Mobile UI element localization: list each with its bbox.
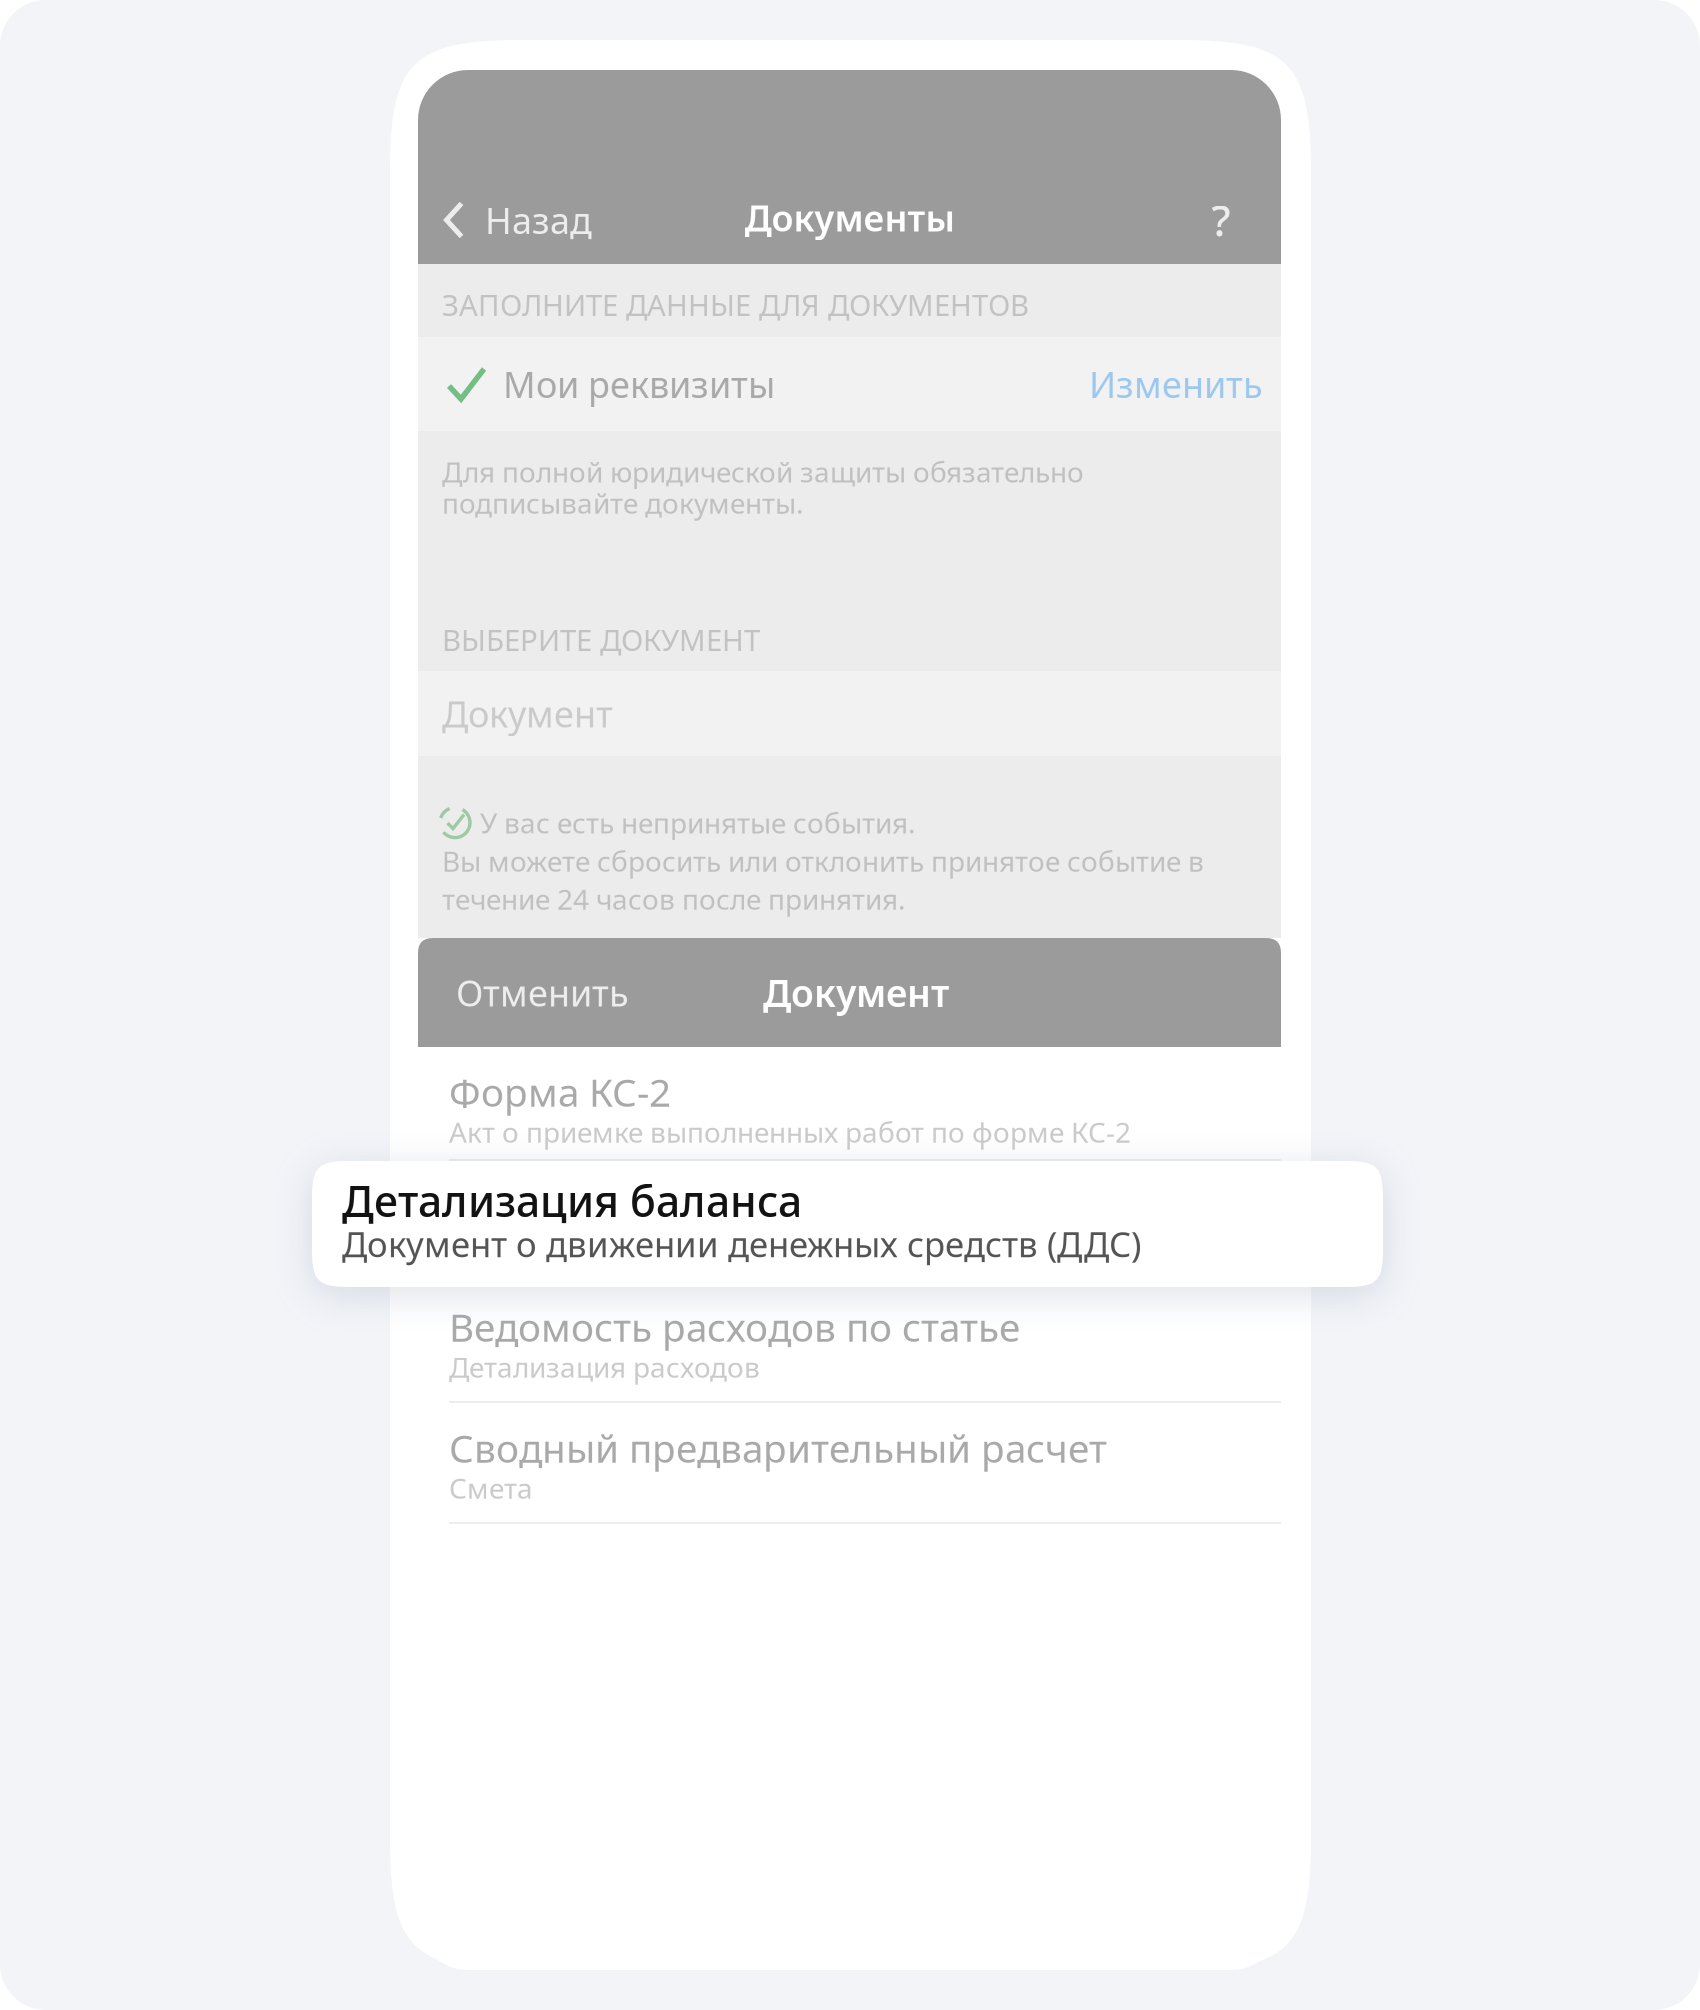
staticText: У вас есть непринятые события. (480, 804, 916, 841)
button[interactable]: Сводный предварительный расчет (418, 1403, 1281, 1524)
button[interactable]: Назад (418, 176, 592, 264)
staticText: подписывайте документы. (442, 484, 804, 521)
staticText: ВЫБЕРИТЕ ДОКУМЕНТ (442, 620, 760, 659)
staticText: Детализация баланса (342, 1172, 802, 1229)
staticText: Отменить (456, 969, 629, 1016)
staticText: Для полной юридической защиты обязательн… (442, 453, 1084, 490)
staticText: Ведомость расходов по статье (449, 1301, 1020, 1352)
staticText: Назад (485, 196, 592, 244)
staticText: Документы (744, 194, 954, 241)
button[interactable]: Помощь (1201, 176, 1281, 264)
staticText: ? (1211, 192, 1230, 248)
button[interactable]: Ведомость расходов по статье (418, 1282, 1281, 1403)
button[interactable]: Детализация баланса (312, 1161, 1383, 1287)
staticText: Детализация расходов (449, 1348, 760, 1385)
staticText: Смета (449, 1469, 533, 1506)
staticText: Изменить (1089, 360, 1263, 408)
button[interactable]: Документ (418, 671, 1281, 756)
button[interactable]: Документ (629, 938, 949, 1047)
staticText: Документ (763, 968, 949, 1017)
button[interactable]: Мои реквизиты (418, 337, 1281, 431)
staticText: Акт о приемке выполненных работ по форме… (449, 1113, 1131, 1150)
button[interactable]: Форма КС-2 (418, 1047, 1281, 1161)
staticText: течение 24 часов после принятия. (442, 880, 906, 918)
button[interactable]: Отменить (418, 938, 629, 1047)
staticText: Документ (442, 690, 613, 737)
staticText: Документ о движении денежных средств (ДД… (342, 1221, 1141, 1267)
staticText: Документ о движении денежных средств (ДД… (449, 1227, 1090, 1264)
staticText: ЗАПОЛНИТЕ ДАННЫЕ ДЛЯ ДОКУМЕНТОВ (442, 285, 1029, 324)
staticText: Вы можете сбросить или отклонить принято… (442, 842, 1204, 879)
staticText: Мои реквизиты (503, 360, 775, 408)
button[interactable]: Детализация баланса (418, 1161, 1281, 1282)
staticText: Сводный предварительный расчет (449, 1422, 1107, 1473)
staticText: Детализация баланса (449, 1180, 856, 1231)
staticText: Форма КС-2 (449, 1066, 671, 1117)
